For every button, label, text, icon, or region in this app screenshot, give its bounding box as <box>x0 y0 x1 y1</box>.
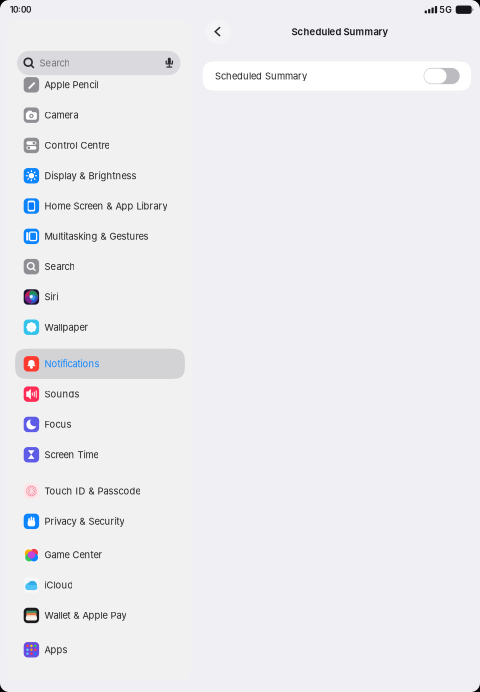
button[interactable]: Focus <box>15 409 185 440</box>
button[interactable]: Wallpaper <box>15 312 185 342</box>
staticText: Apple Pencil <box>44 79 98 90</box>
button[interactable]: Siri <box>15 282 185 312</box>
button[interactable]: Search <box>15 251 185 282</box>
staticText: Search <box>39 57 70 69</box>
staticText: Scheduled Summary <box>215 70 307 82</box>
staticText: iCloud <box>44 579 73 591</box>
staticText: Home Screen & App Library <box>44 200 167 212</box>
staticText: Siri <box>44 291 58 303</box>
staticText: Wallpaper <box>44 322 88 333</box>
button[interactable]: Apple Pencil <box>15 70 185 100</box>
staticText: Scheduled Summary <box>291 26 388 38</box>
button[interactable]: Display & Brightness <box>15 161 185 191</box>
button[interactable]: iCloud <box>15 570 185 600</box>
button[interactable]: Game Center <box>15 540 185 570</box>
button[interactable]: Multitasking & Gestures <box>15 221 185 251</box>
button[interactable]: Apps <box>15 635 185 665</box>
button[interactable]: Back <box>206 19 231 44</box>
button[interactable]: Scheduled Summary <box>424 68 460 84</box>
staticText: Screen Time <box>44 449 98 460</box>
staticText: Search <box>44 261 75 272</box>
button[interactable]: Wallet & Apple Pay <box>15 600 185 631</box>
staticText: Notifications <box>44 358 99 369</box>
button[interactable]: Sounds <box>15 379 185 409</box>
button[interactable]: Home Screen & App Library <box>15 191 185 221</box>
staticText: Multitasking & Gestures <box>44 231 148 242</box>
button[interactable]: Touch ID & Passcode <box>15 476 185 506</box>
staticText: 10:00 <box>10 5 31 15</box>
staticText: Control Centre <box>44 140 109 151</box>
button[interactable]: Control Centre <box>15 130 185 161</box>
staticText: Camera <box>44 109 78 121</box>
button[interactable]: Notifications <box>15 349 185 379</box>
staticText: Focus <box>44 419 71 430</box>
staticText: Game Center <box>44 549 102 560</box>
button[interactable]: Privacy & Security <box>15 506 185 536</box>
staticText: Wallet & Apple Pay <box>44 610 126 621</box>
button[interactable]: Screen Time <box>15 440 185 470</box>
staticText: Display & Brightness <box>44 170 136 181</box>
staticText: Privacy & Security <box>44 516 124 527</box>
staticText: Apps <box>44 644 67 655</box>
staticText: 5G <box>439 4 452 15</box>
button[interactable]: Camera <box>15 100 185 130</box>
staticText: Touch ID & Passcode <box>44 485 140 497</box>
staticText: Sounds <box>44 388 79 400</box>
